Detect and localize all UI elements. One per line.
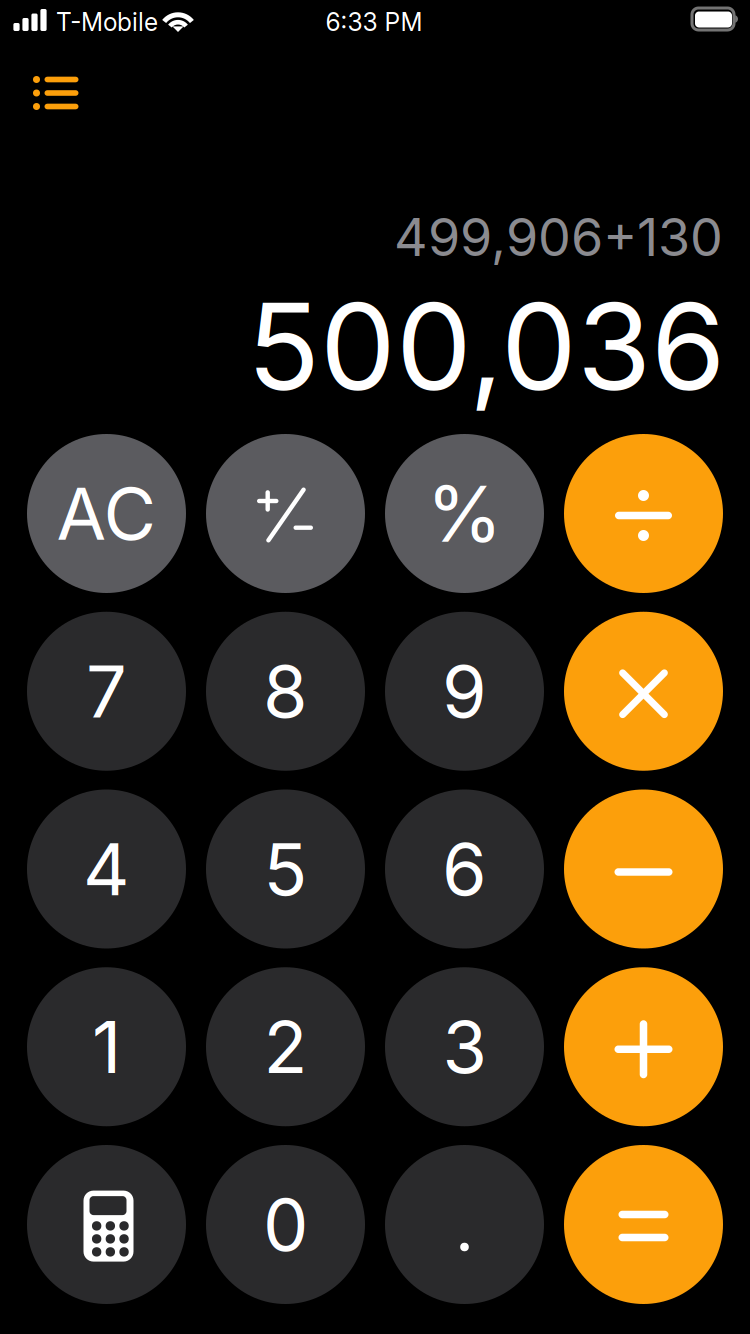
staticText: 6:33 PM (325, 7, 422, 37)
staticText: 2 (263, 1003, 307, 1090)
button[interactable]: 9 (385, 612, 544, 771)
staticText: 3 (442, 1003, 486, 1090)
staticText: 6 (442, 825, 487, 912)
staticText: 0 (263, 1181, 308, 1268)
button[interactable]: Multiply (564, 612, 723, 771)
button[interactable]: Divide (564, 434, 723, 593)
button[interactable]: % (385, 434, 544, 593)
staticText: T-Mobile (56, 7, 158, 37)
button[interactable]: 2 (206, 967, 365, 1126)
button[interactable]: History (0, 57, 104, 129)
button[interactable]: 0 (206, 1145, 365, 1304)
button[interactable]: Plus (564, 967, 723, 1126)
button[interactable]: 5 (206, 789, 365, 948)
button[interactable]: 1 (27, 967, 186, 1126)
staticText: 1 (92, 1003, 121, 1090)
staticText: 4 (83, 825, 130, 912)
button[interactable]: Equals (564, 1145, 723, 1304)
staticText: 5 (263, 825, 307, 912)
button[interactable]: 3 (385, 967, 544, 1126)
staticText: 7 (86, 648, 127, 735)
button[interactable]: 4 (27, 789, 186, 948)
button[interactable]: 7 (27, 612, 186, 771)
button[interactable]: Plus Minus (206, 434, 365, 593)
button[interactable]: 8 (206, 612, 365, 771)
staticText: 499,906+130 (394, 205, 723, 268)
button[interactable]: Calculator (27, 1145, 186, 1304)
staticText: 9 (442, 648, 487, 735)
button[interactable]: Minus (564, 789, 723, 948)
staticText: % (426, 467, 502, 560)
button[interactable]: 6 (385, 789, 544, 948)
staticText: 8 (263, 648, 308, 735)
button[interactable]: Decimal point (385, 1145, 544, 1304)
staticText: 500,036 (247, 273, 725, 419)
staticText: AC (56, 470, 156, 557)
button[interactable]: AC (27, 434, 186, 593)
